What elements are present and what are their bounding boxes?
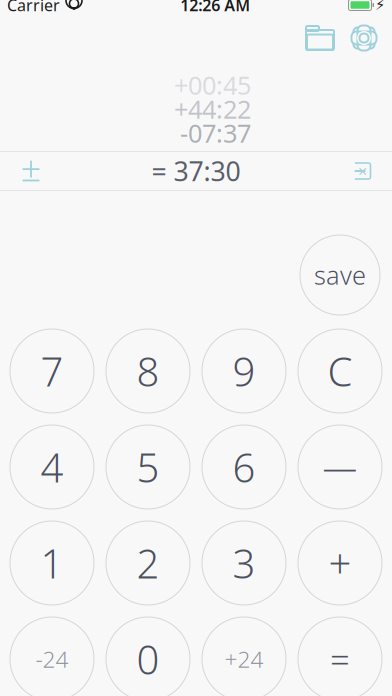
button[interactable]: 5 xyxy=(106,425,190,509)
staticText: 4 xyxy=(40,440,63,493)
staticText: × xyxy=(358,160,367,182)
staticText: 8 xyxy=(136,344,159,397)
staticText: save xyxy=(314,258,366,292)
button[interactable]: + xyxy=(298,521,382,605)
staticText: 2 xyxy=(136,536,159,589)
button[interactable]: Settings xyxy=(342,16,386,60)
staticText: +24 xyxy=(224,644,263,674)
staticText: 12:26 AM xyxy=(180,0,250,16)
button[interactable]: -24 xyxy=(10,617,94,696)
staticText: 1 xyxy=(40,536,63,589)
staticText: +00:45 xyxy=(174,68,251,102)
button[interactable]: save xyxy=(300,235,380,315)
staticText: = xyxy=(330,636,350,682)
button[interactable]: 0 xyxy=(106,617,190,696)
button[interactable]: Delete xyxy=(334,152,388,190)
button[interactable]: 1 xyxy=(10,521,94,605)
staticText: 0 xyxy=(136,632,159,685)
staticText: Carrier xyxy=(7,0,60,16)
staticText: +44:22 xyxy=(174,92,251,126)
staticText: 9 xyxy=(232,344,255,397)
staticText: 6 xyxy=(232,440,255,493)
button[interactable]: C xyxy=(298,329,382,413)
button[interactable]: 6 xyxy=(202,425,286,509)
staticText: -07:37 xyxy=(180,116,251,150)
button[interactable]: 2 xyxy=(106,521,190,605)
staticText: C xyxy=(327,344,352,397)
button[interactable]: Saved calculations xyxy=(298,16,342,60)
button[interactable]: — xyxy=(298,425,382,509)
staticText: ⚡︎ xyxy=(375,0,385,13)
button[interactable]: 4 xyxy=(10,425,94,509)
button[interactable]: 7 xyxy=(10,329,94,413)
button[interactable]: = xyxy=(298,617,382,696)
button[interactable]: 9 xyxy=(202,329,286,413)
staticText: 7 xyxy=(40,344,63,397)
staticText: 5 xyxy=(136,440,159,493)
staticText: -24 xyxy=(35,644,68,674)
staticText: 3 xyxy=(232,536,255,589)
button[interactable]: 8 xyxy=(106,329,190,413)
staticText: + xyxy=(328,536,351,589)
staticText: — xyxy=(322,444,357,490)
button[interactable]: Toggle sign xyxy=(4,152,58,190)
button[interactable]: 3 xyxy=(202,521,286,605)
button[interactable]: +24 xyxy=(202,617,286,696)
staticText: = 37:30 xyxy=(151,153,240,189)
